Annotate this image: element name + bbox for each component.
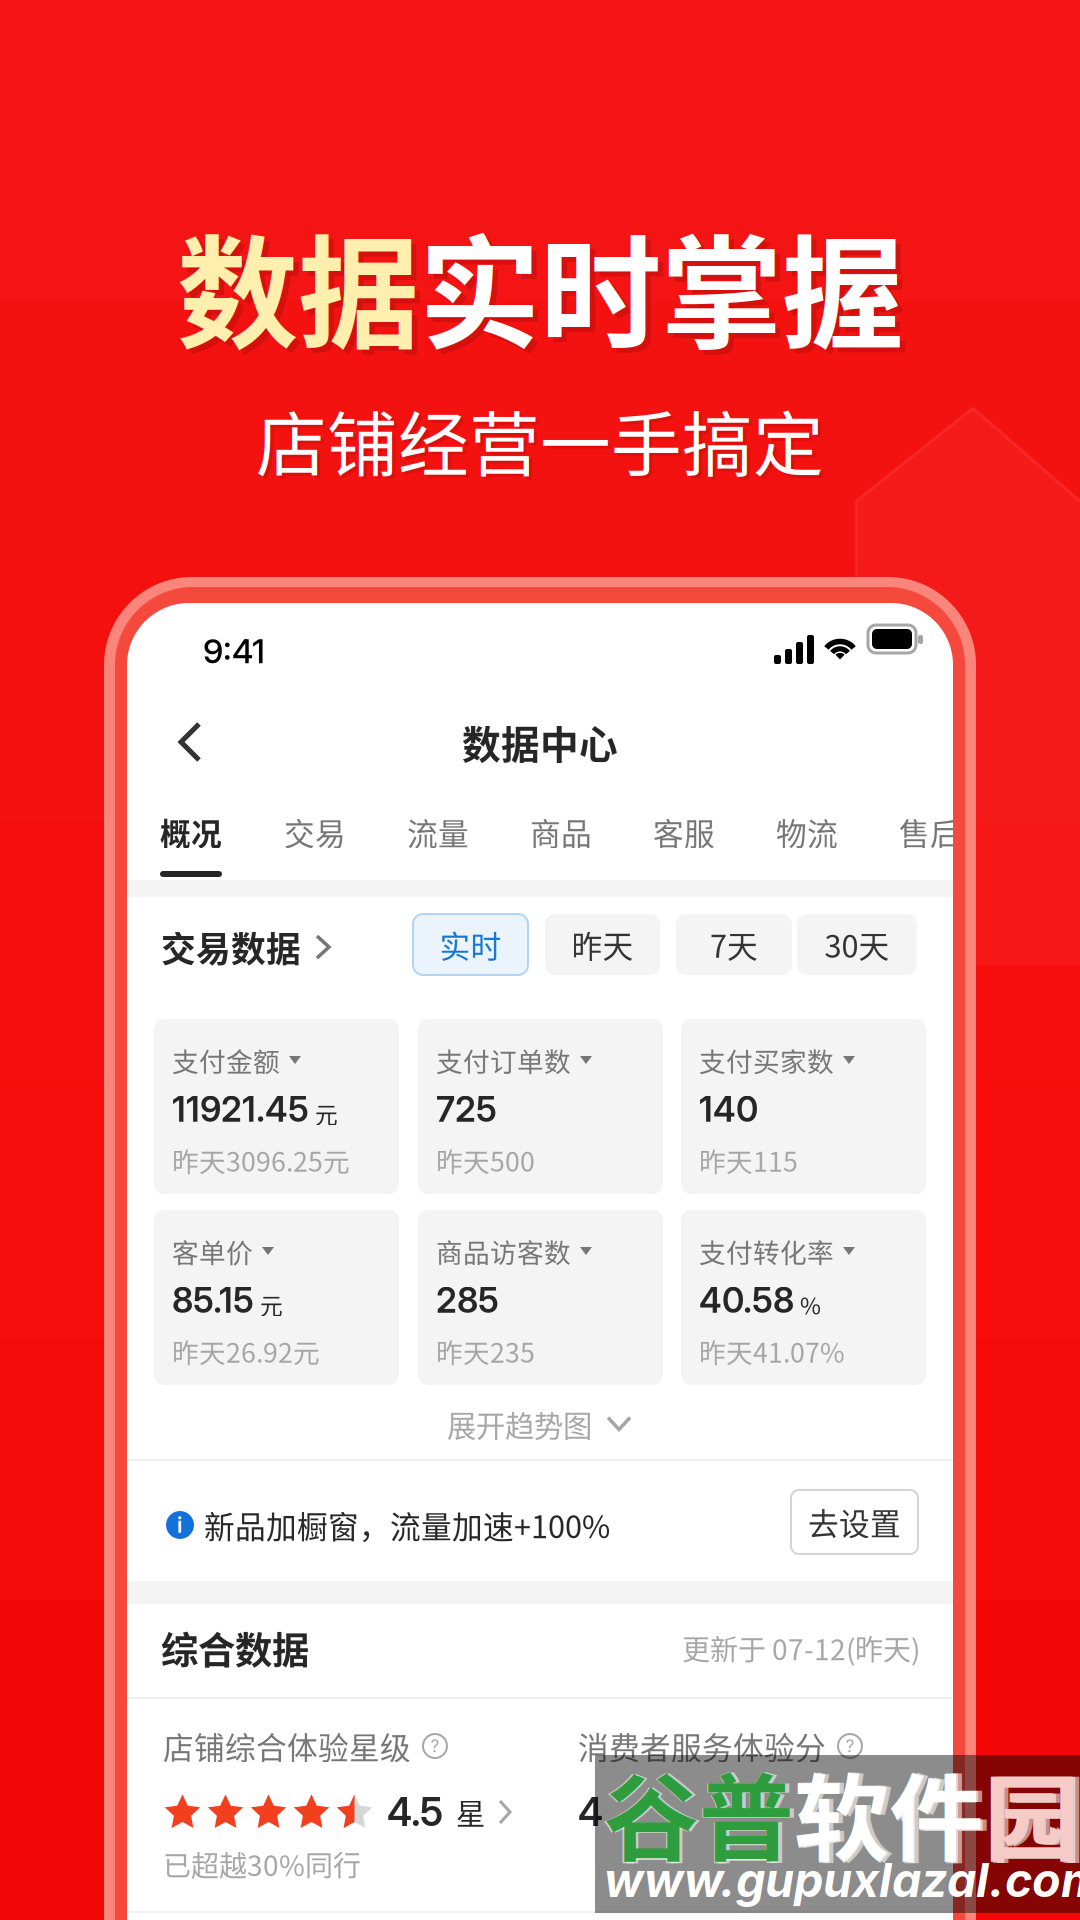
staticText: 店铺综合体验星级 bbox=[163, 1724, 411, 1768]
staticText: 客单价 bbox=[172, 1232, 253, 1270]
button[interactable]: 7天 bbox=[127, 603, 243, 664]
staticText: 谷普软件园 bbox=[602, 1742, 1080, 1881]
staticText: 85.15 bbox=[172, 1279, 254, 1321]
staticText: 交易数据 bbox=[161, 922, 301, 972]
staticText: 店铺经营一手搞定 bbox=[256, 389, 824, 491]
button[interactable]: 去设置 bbox=[127, 603, 254, 667]
staticText: www.gupuxlazal.com bbox=[604, 1852, 1080, 1908]
button[interactable]: 流量 bbox=[127, 603, 191, 655]
staticText: 概况 bbox=[160, 810, 222, 854]
staticText: 去设置 bbox=[808, 1500, 901, 1544]
staticText: 软件 bbox=[794, 1743, 984, 1881]
staticText: 交易 bbox=[284, 810, 346, 854]
button[interactable]: 客服 bbox=[127, 603, 191, 655]
staticText: 11921.45 bbox=[172, 1088, 309, 1130]
staticText: 元 bbox=[315, 1097, 338, 1130]
button[interactable]: 展开趋势图 bbox=[127, 603, 953, 659]
staticText: 店铺经营一手搞定 bbox=[259, 392, 827, 494]
staticText: 实时 bbox=[439, 922, 501, 967]
staticText: ? bbox=[430, 1735, 439, 1756]
staticText: 9:41 bbox=[203, 631, 265, 671]
button[interactable]: 昨天 bbox=[127, 603, 242, 664]
staticText: 昨天3096.25元 bbox=[172, 1141, 350, 1179]
staticText: 谷普软件园 bbox=[606, 1742, 1080, 1881]
staticText: 7天 bbox=[710, 922, 758, 967]
button[interactable]: 30天 bbox=[127, 603, 247, 664]
staticText: 元 bbox=[260, 1288, 283, 1321]
staticText: 数据 bbox=[177, 197, 419, 373]
staticText: 140 bbox=[699, 1088, 758, 1130]
staticText: 综合数据 bbox=[161, 1621, 309, 1675]
button[interactable]: 客单价 bbox=[127, 603, 372, 778]
staticText: 更新于 07-12(昨天) bbox=[682, 1628, 920, 1668]
staticText: 流量 bbox=[407, 810, 469, 854]
staticText: 昨天115 bbox=[699, 1141, 798, 1179]
button[interactable]: 支付金额 bbox=[127, 603, 372, 778]
staticText: 已超越30%同行 bbox=[163, 1844, 361, 1884]
staticText: 物流 bbox=[776, 810, 838, 854]
button[interactable]: 商品访客数 bbox=[127, 603, 372, 778]
staticText: 支付转化率 bbox=[699, 1232, 834, 1270]
staticText: 支付金额 bbox=[172, 1041, 280, 1079]
staticText: 谷普 bbox=[604, 1743, 794, 1881]
staticText: 展开趋势图 bbox=[447, 1403, 592, 1445]
button[interactable]: 交易数据 bbox=[127, 603, 347, 659]
staticText: 40.58 bbox=[699, 1279, 794, 1321]
staticText: 客服 bbox=[653, 810, 715, 854]
staticText: 昨天235 bbox=[436, 1332, 535, 1370]
staticText: 实时掌握 bbox=[424, 202, 908, 378]
staticText: i bbox=[177, 1512, 183, 1538]
staticText: 新品加橱窗，流量加速+100% bbox=[204, 1503, 610, 1547]
staticText: 昨天41.07% bbox=[699, 1332, 845, 1370]
staticText: 4 bbox=[578, 1789, 603, 1835]
staticText: 支付订单数 bbox=[436, 1041, 571, 1079]
button[interactable]: 商品 bbox=[127, 603, 191, 655]
staticText: 园 bbox=[984, 1743, 1079, 1881]
button[interactable]: 支付转化率 bbox=[127, 603, 372, 778]
button[interactable]: 概况 bbox=[127, 603, 191, 655]
staticText: % bbox=[800, 1288, 821, 1321]
staticText: 4.5 bbox=[387, 1789, 443, 1835]
button[interactable]: 物流 bbox=[127, 603, 191, 655]
staticText: 昨天 bbox=[571, 922, 633, 967]
staticText: 星 bbox=[456, 1791, 485, 1833]
staticText: 285 bbox=[436, 1279, 499, 1321]
button[interactable]: 交易 bbox=[127, 603, 191, 655]
button[interactable]: 返回 bbox=[127, 603, 207, 685]
staticText: 商品 bbox=[530, 810, 592, 854]
staticText: 数据 bbox=[182, 202, 424, 378]
button[interactable]: 售后 bbox=[127, 603, 191, 655]
button[interactable]: 支付订单数 bbox=[127, 603, 372, 778]
staticText: ? bbox=[845, 1735, 854, 1756]
staticText: 昨天26.92元 bbox=[172, 1332, 320, 1370]
staticText: 实时掌握 bbox=[419, 197, 903, 373]
staticText: 商品访客数 bbox=[436, 1232, 571, 1270]
staticText: 售后 bbox=[899, 810, 961, 854]
staticText: 消费者服务体验分 bbox=[578, 1724, 826, 1768]
staticText: 30天 bbox=[824, 922, 889, 967]
staticText: 昨天500 bbox=[436, 1141, 535, 1179]
button[interactable]: 支付买家数 bbox=[127, 603, 372, 778]
staticText: 数据中心 bbox=[462, 714, 618, 770]
button[interactable]: 实时 bbox=[127, 603, 242, 664]
staticText: 725 bbox=[436, 1088, 497, 1130]
staticText: 支付买家数 bbox=[699, 1041, 834, 1079]
